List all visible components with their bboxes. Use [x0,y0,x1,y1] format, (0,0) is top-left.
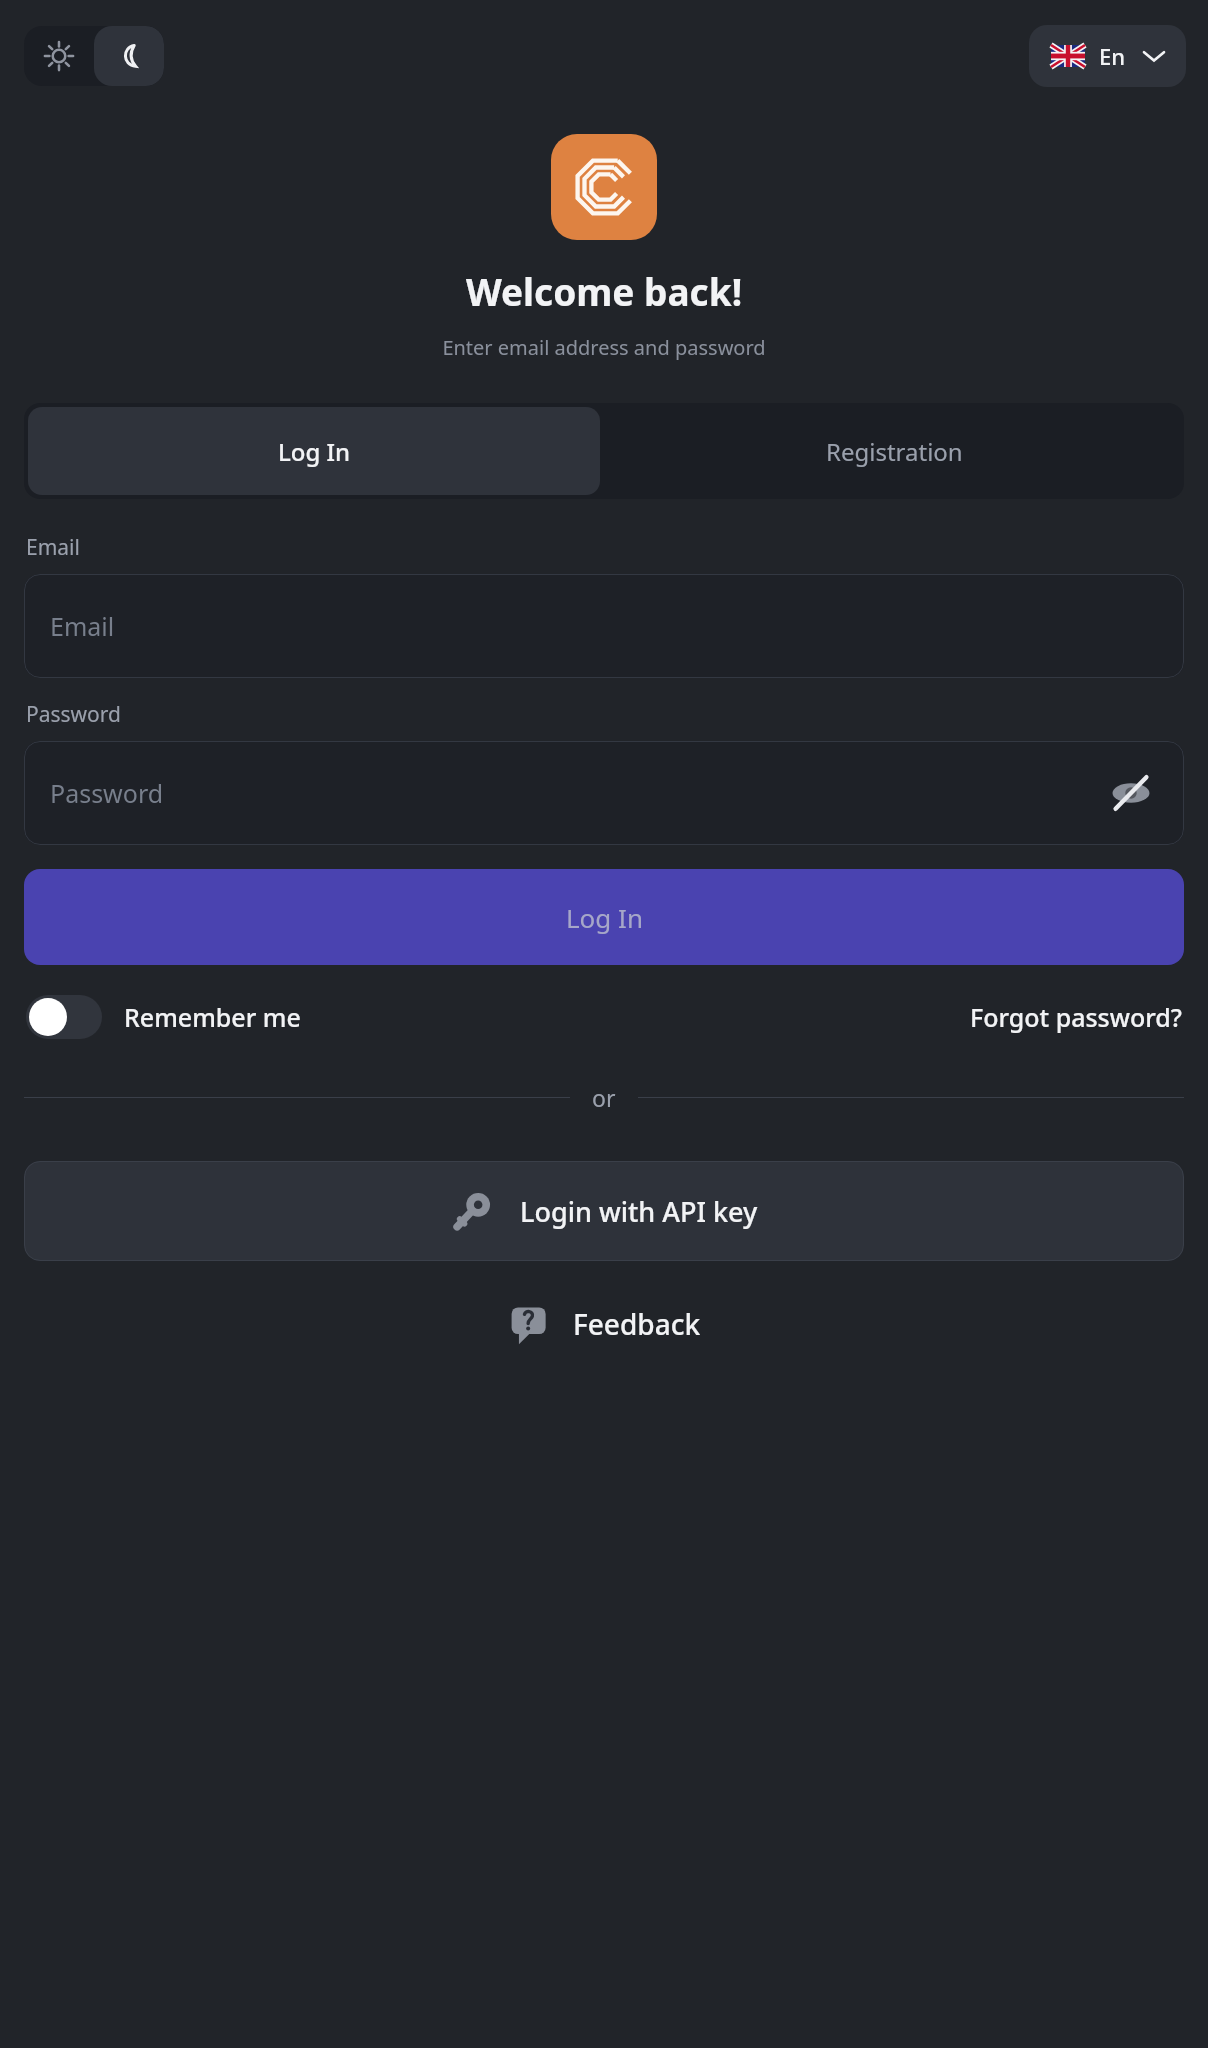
staticText: Email [50,609,115,643]
button[interactable]: Login with API key [24,1161,1184,1261]
button[interactable]: Remember me [26,995,301,1039]
button[interactable]: Forgot password? [970,1000,1182,1034]
staticText: Login with API key [520,1193,758,1230]
button[interactable]: Registration [604,403,1184,499]
button[interactable]: Show password [1100,762,1162,824]
staticText: Enter email address and password [0,334,1208,361]
button[interactable]: Log In [28,407,600,495]
staticText: Log In [278,435,351,468]
staticText: or [592,1082,616,1113]
staticText: Password [26,700,1208,729]
staticText: Welcome back! [0,266,1208,316]
staticText: Email [26,533,1208,562]
button[interactable]: Email [24,574,1184,678]
button[interactable]: En [1029,25,1186,87]
button[interactable]: Password [24,741,1184,845]
staticText: Remember me [124,1000,301,1034]
staticText: Log In [566,900,643,935]
staticText: Feedback [573,1305,701,1343]
button[interactable]: Log In [24,869,1184,965]
staticText: En [1099,41,1126,71]
staticText: Forgot password? [970,1000,1182,1034]
button[interactable]: Light theme [24,26,94,86]
staticText: Registration [826,435,963,468]
staticText: Password [50,776,164,810]
button[interactable]: Feedback [507,1301,701,1347]
button[interactable]: Dark theme [94,26,164,86]
